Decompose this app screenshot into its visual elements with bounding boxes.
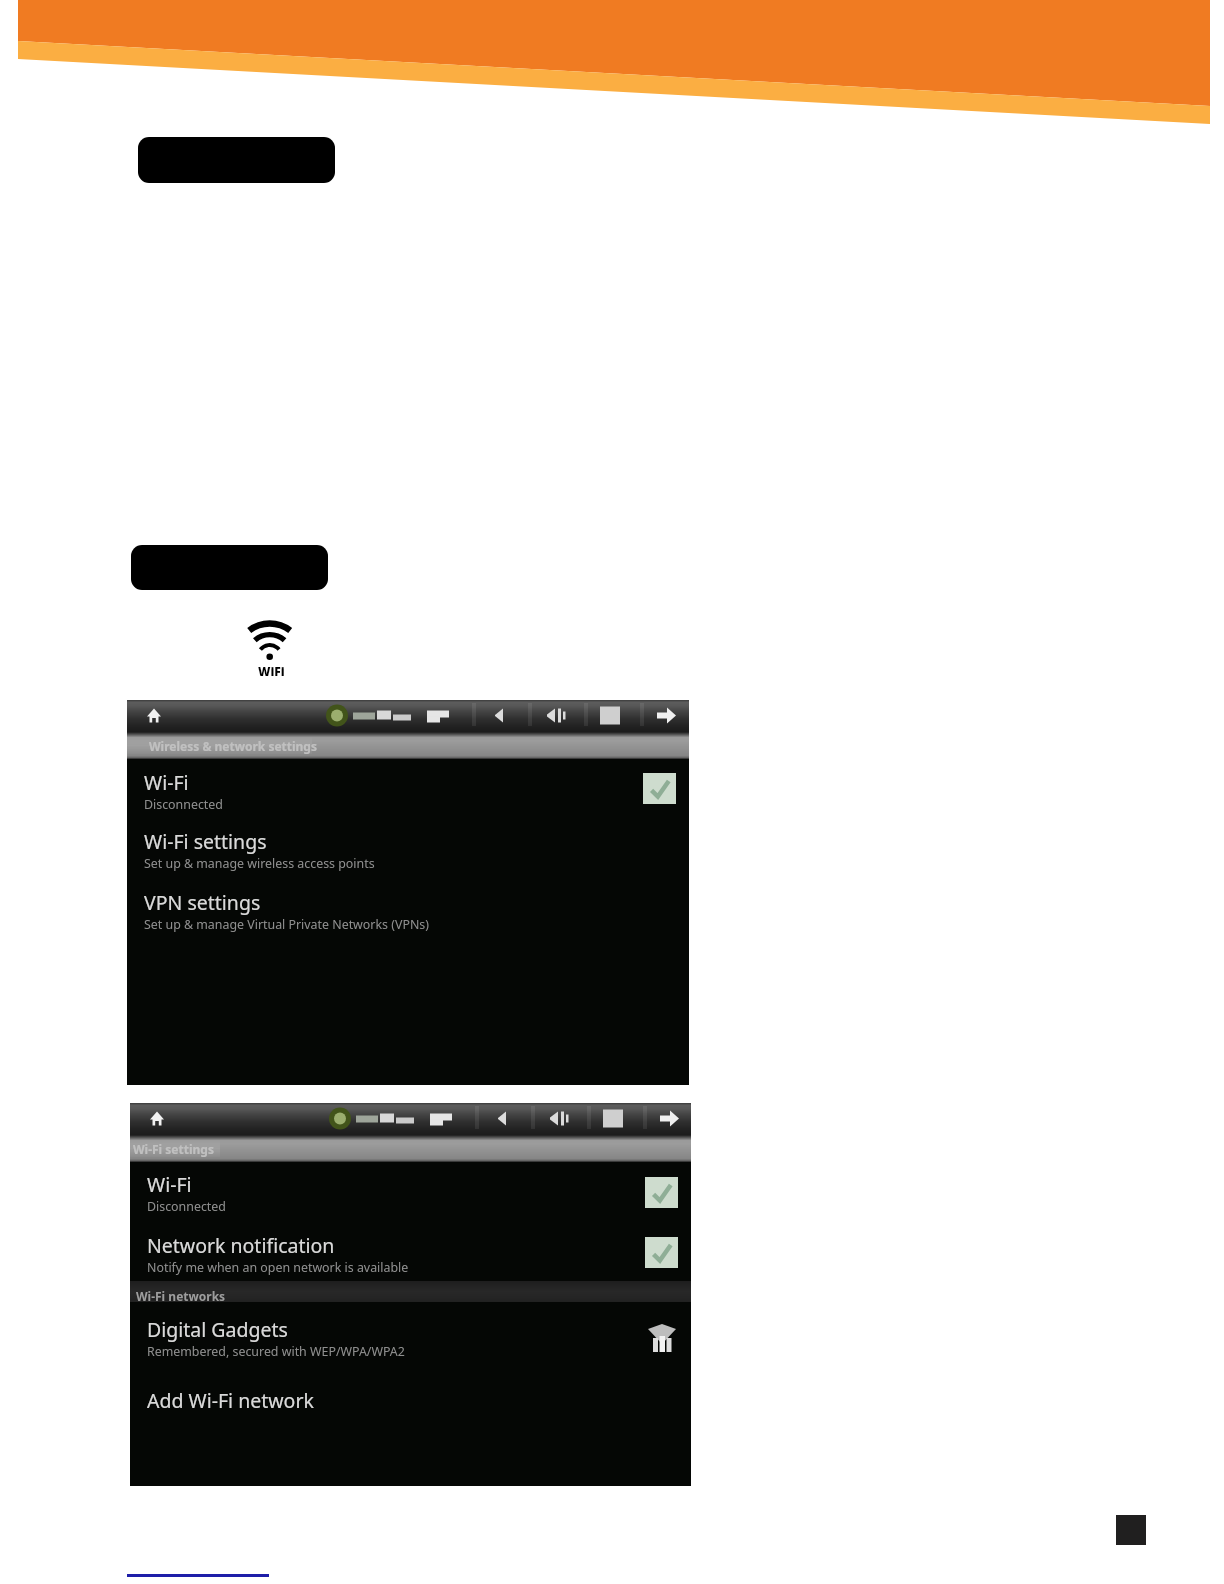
button[interactable]: Toggle setting bbox=[645, 1237, 678, 1268]
staticText: WiFi bbox=[258, 663, 285, 679]
staticText: Notify me when an open network is availa… bbox=[147, 1259, 409, 1276]
staticText: Disconnected bbox=[147, 1198, 226, 1215]
staticText: Wi-Fi bbox=[147, 1171, 192, 1198]
button[interactable]: Wi-Fi settings bbox=[127, 818, 689, 879]
button[interactable]: Section heading bbox=[138, 137, 335, 183]
button[interactable]: Home bbox=[143, 1103, 171, 1135]
staticText: VPN settings bbox=[144, 889, 261, 916]
button[interactable]: Toggle setting bbox=[645, 1177, 678, 1208]
button[interactable]: Recent apps bbox=[650, 1103, 692, 1135]
staticText: Network notification bbox=[147, 1232, 335, 1259]
button[interactable]: Toggle setting bbox=[643, 773, 676, 804]
button[interactable]: Back bbox=[479, 700, 521, 732]
button[interactable]: Section heading bbox=[131, 545, 328, 590]
button[interactable]: Recent apps bbox=[647, 700, 689, 732]
staticText: Disconnected bbox=[144, 796, 223, 813]
button[interactable]: Wi-Fi bbox=[130, 1162, 691, 1223]
button[interactable]: Volume bbox=[538, 1103, 580, 1135]
button[interactable]: Add Wi-Fi network bbox=[130, 1373, 691, 1433]
button[interactable]: Volume bbox=[535, 700, 577, 732]
staticText: Wi-Fi settings bbox=[133, 1141, 214, 1157]
button[interactable]: Wi-Fi bbox=[127, 759, 689, 818]
button[interactable]: Notifications bbox=[420, 1103, 462, 1135]
button[interactable]: Wi-Fi signal strength bbox=[646, 1320, 678, 1356]
staticText: Wi-Fi settings bbox=[144, 828, 267, 855]
button[interactable]: Back bbox=[482, 1103, 524, 1135]
button[interactable]: Home bbox=[140, 700, 168, 732]
button[interactable]: Digital Gadgets bbox=[130, 1302, 691, 1373]
button[interactable]: Menu bbox=[591, 700, 633, 732]
button[interactable]: Notifications bbox=[417, 700, 459, 732]
staticText: Add Wi-Fi network bbox=[147, 1387, 314, 1414]
staticText: Digital Gadgets bbox=[147, 1316, 288, 1343]
staticText: Wireless & network settings bbox=[149, 738, 317, 754]
staticText: Set up & manage wireless access points bbox=[144, 855, 375, 872]
button[interactable]: VPN settings bbox=[127, 879, 689, 941]
button[interactable]: Network notification bbox=[130, 1223, 691, 1281]
staticText: Wi-Fi bbox=[144, 769, 189, 796]
staticText: Wi-Fi networks bbox=[136, 1288, 226, 1304]
staticText: Remembered, secured with WEP/WPA/WPA2 bbox=[147, 1343, 405, 1360]
staticText: Set up & manage Virtual Private Networks… bbox=[144, 916, 429, 933]
button[interactable]: Menu bbox=[594, 1103, 636, 1135]
